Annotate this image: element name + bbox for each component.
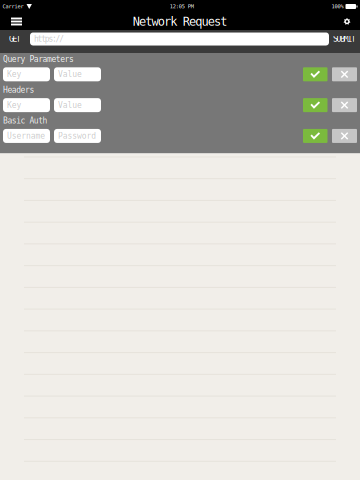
button[interactable]: Menu — [0, 13, 33, 30]
button[interactable]: Add — [303, 67, 327, 81]
staticText: SUBMIT — [333, 34, 356, 44]
staticText: Value — [58, 70, 82, 79]
button[interactable]: Remove — [332, 129, 357, 143]
staticText: Username — [7, 131, 45, 141]
staticText: Key — [7, 100, 21, 110]
button[interactable]: Key — [3, 98, 50, 112]
staticText: GET — [9, 34, 21, 44]
button[interactable]: Password — [54, 129, 101, 143]
staticText: Query Parameters — [3, 54, 74, 64]
staticText: Key — [7, 70, 21, 79]
staticText: Headers — [3, 85, 34, 95]
button[interactable]: Username — [3, 129, 50, 143]
button[interactable]: GET — [0, 32, 30, 45]
button[interactable]: Settings — [334, 13, 360, 30]
staticText: Network Request — [133, 14, 227, 28]
button[interactable]: https:// — [30, 32, 329, 45]
button[interactable]: Value — [54, 67, 101, 81]
staticText: Password — [58, 131, 96, 141]
staticText: https:// — [34, 34, 64, 44]
button[interactable]: Key — [3, 67, 50, 81]
button[interactable]: Value — [54, 98, 101, 112]
button[interactable]: Add — [303, 98, 327, 112]
staticText: Basic Auth — [3, 116, 48, 125]
staticText: 100% — [331, 3, 343, 10]
staticText: Carrier — [2, 3, 23, 10]
staticText: 12:05 PM — [170, 3, 194, 10]
button[interactable]: Remove — [332, 98, 357, 112]
button[interactable]: Add — [303, 129, 327, 143]
button[interactable]: Remove — [332, 67, 357, 81]
button[interactable]: SUBMIT — [329, 32, 360, 45]
staticText: Value — [58, 100, 82, 110]
